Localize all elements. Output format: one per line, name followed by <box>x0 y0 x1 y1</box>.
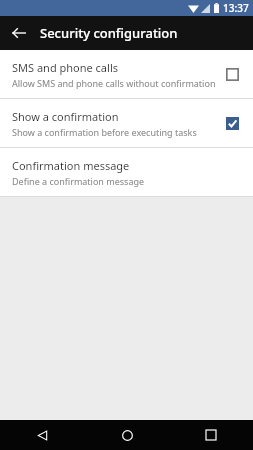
button[interactable]: SMS and phone calls <box>0 50 253 98</box>
button[interactable]: Back <box>6 20 32 46</box>
button[interactable]: Home <box>85 420 169 450</box>
button[interactable]: Back <box>0 420 85 450</box>
button[interactable]: Show a confirmation <box>0 99 253 147</box>
staticText: SMS and phone calls <box>12 60 118 75</box>
staticText: 13:37 <box>223 1 249 15</box>
staticText: Show a confirmation before executing tas… <box>12 126 197 138</box>
staticText: Allow SMS and phone calls without confir… <box>12 77 216 89</box>
button[interactable]: Confirmation message <box>0 148 253 196</box>
staticText: Security configuration <box>40 24 178 42</box>
button[interactable]: Recents <box>169 420 253 450</box>
staticText: Define a confirmation message <box>12 175 145 187</box>
staticText: Show a confirmation <box>12 109 119 124</box>
button[interactable]: Unchecked <box>221 63 243 85</box>
staticText: Confirmation message <box>12 158 130 173</box>
button[interactable]: Checked <box>221 112 243 134</box>
